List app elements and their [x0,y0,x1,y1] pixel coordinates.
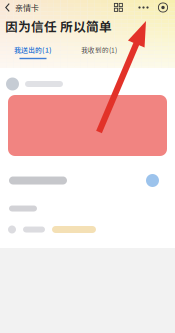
staticText: 我送出的(1) [14,45,52,55]
button[interactable]: 我送出的(1) [0,41,66,63]
button[interactable]: More [135,0,152,15]
staticText: 因为信任 所以简单 [5,17,112,35]
staticText: 亲情卡 [15,2,39,13]
button[interactable]: Scan code [111,0,126,15]
staticText: 我收到的(1) [81,45,117,55]
button[interactable]: 亲情卡 [0,0,39,15]
button[interactable]: Close [156,0,170,14]
button[interactable]: 我收到的(1) [66,41,132,63]
